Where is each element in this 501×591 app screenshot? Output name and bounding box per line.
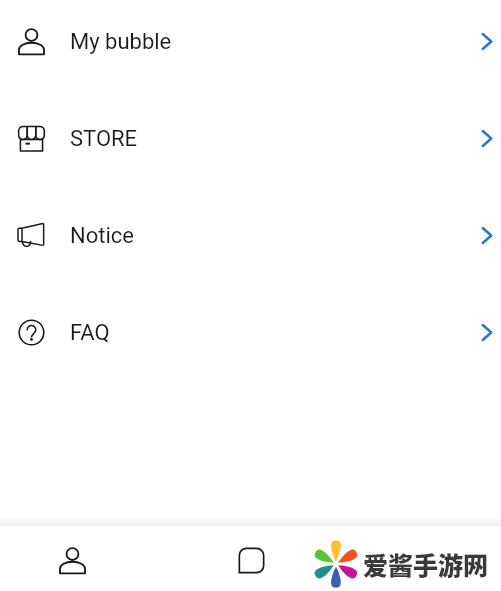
button[interactable]: My bubble [0, 0, 501, 82]
staticText: My bubble [70, 29, 172, 55]
button[interactable]: Profile [0, 526, 145, 591]
button[interactable]: Notice [0, 187, 501, 284]
button[interactable]: More [325, 526, 501, 591]
button[interactable]: FAQ [0, 284, 501, 381]
button[interactable]: Chat [161, 526, 341, 591]
staticText: 爱酱手游网 [363, 546, 489, 582]
staticText: Notice [70, 223, 134, 249]
button[interactable]: STORE [0, 90, 501, 187]
staticText: STORE [70, 126, 138, 152]
staticText: FAQ [70, 320, 110, 346]
